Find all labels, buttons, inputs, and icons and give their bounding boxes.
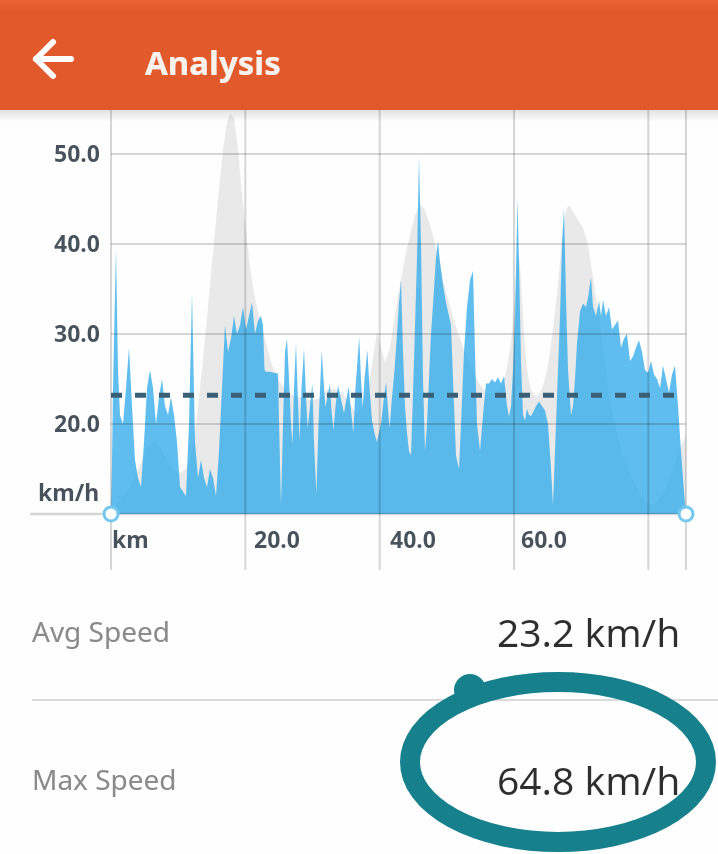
staticText: 23.2 km/h xyxy=(497,605,681,658)
staticText: 20.0 xyxy=(54,407,100,438)
staticText: 40.0 xyxy=(390,523,436,554)
staticText: 64.8 km/h xyxy=(497,753,681,806)
staticText: 40.0 xyxy=(54,227,100,258)
staticText: Avg Speed xyxy=(32,612,171,650)
staticText: Max Speed xyxy=(32,760,177,798)
staticText: km xyxy=(112,523,149,554)
staticText: 60.0 xyxy=(521,523,567,554)
button[interactable] xyxy=(28,33,80,85)
staticText: 20.0 xyxy=(254,523,300,554)
staticText: km/h xyxy=(38,476,100,507)
staticText: Analysis xyxy=(145,40,281,85)
button[interactable]: Avg Speed xyxy=(32,600,681,662)
staticText: 30.0 xyxy=(54,317,100,348)
button[interactable]: Max Speed xyxy=(32,748,681,810)
staticText: 50.0 xyxy=(54,137,100,168)
